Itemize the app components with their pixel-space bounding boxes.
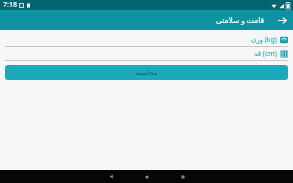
staticText: وزن (kg) [251, 35, 277, 45]
staticText: قد (cm) [254, 49, 277, 59]
button[interactable]: Back [100, 170, 122, 183]
staticText: قامت و سلامتی [216, 15, 265, 25]
staticText: محاسبه [135, 69, 158, 77]
staticText: 7:18 [3, 0, 17, 10]
button[interactable]: Recents [172, 170, 194, 183]
button[interactable]: Home [136, 170, 158, 183]
button[interactable]: محاسبه [5, 65, 288, 80]
button[interactable]: وزن (kg) [0, 33, 293, 47]
button[interactable]: قد (cm) [0, 47, 293, 61]
button[interactable]: Next [275, 13, 289, 27]
